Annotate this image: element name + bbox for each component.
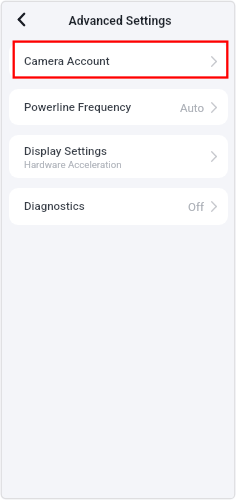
staticText: Hardware Acceleration xyxy=(24,159,122,170)
staticText: Powerline Frequency xyxy=(24,100,132,113)
staticText: Camera Account xyxy=(24,54,110,67)
staticText: Advanced Settings xyxy=(2,14,236,28)
staticText: Display Settings xyxy=(24,144,107,157)
button[interactable]: Diagnostics xyxy=(9,188,228,225)
staticText: Off xyxy=(188,200,204,213)
staticText: Diagnostics xyxy=(24,199,85,212)
button[interactable]: Camera Account xyxy=(9,43,228,79)
button[interactable]: Powerline Frequency xyxy=(9,89,228,125)
button[interactable]: Display Settings xyxy=(9,135,228,178)
button[interactable]: Back xyxy=(7,5,35,33)
staticText: Auto xyxy=(180,101,204,114)
